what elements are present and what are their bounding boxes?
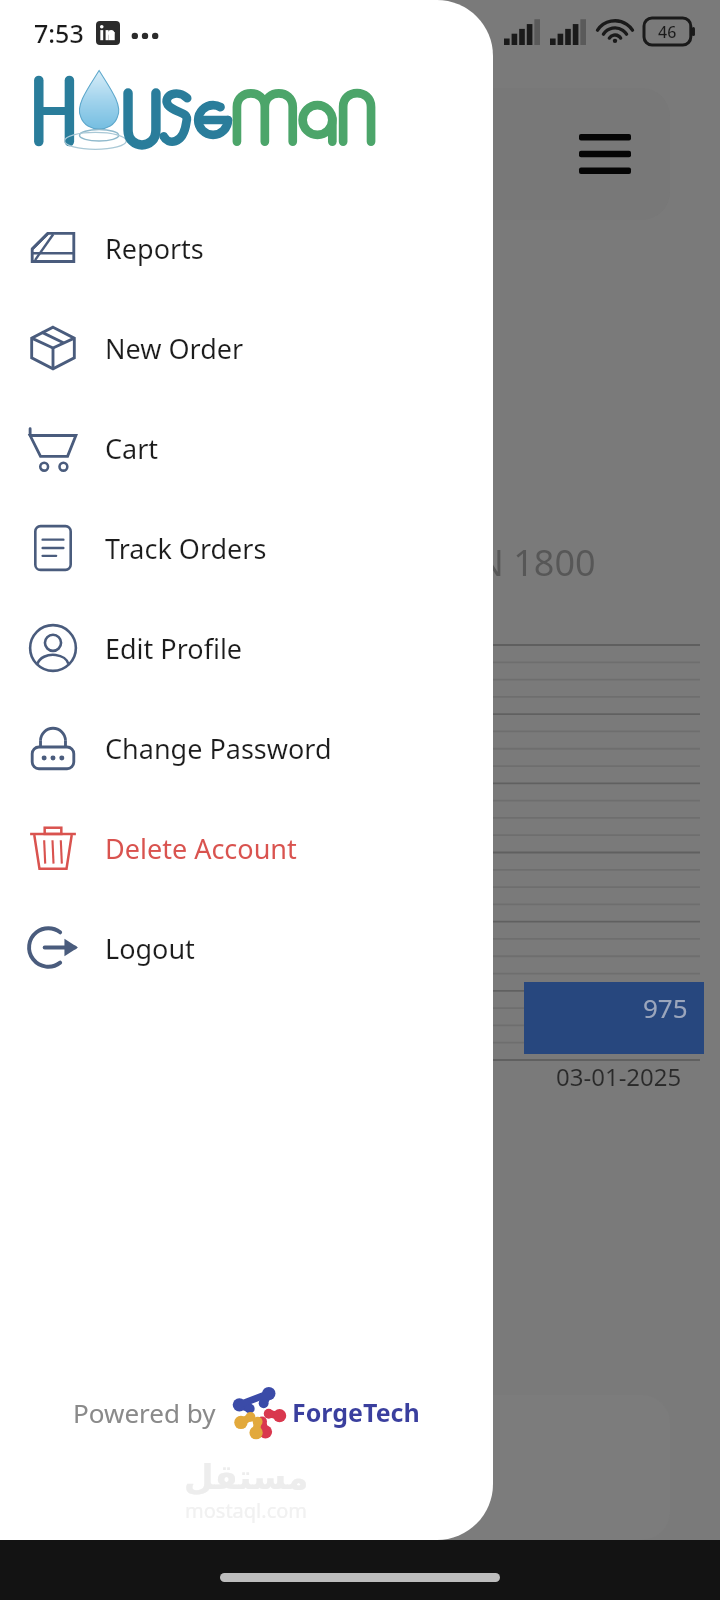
button[interactable]: Open menu — [330, 88, 670, 220]
staticText: Change Password — [105, 730, 332, 767]
staticText: Powered by — [73, 1395, 216, 1430]
staticText: 03-01-2025 — [556, 1060, 682, 1093]
staticText: 46 — [658, 21, 677, 43]
staticText: 7:53 — [34, 16, 84, 50]
staticText: Reports — [105, 230, 204, 267]
staticText: 975 — [643, 990, 688, 1025]
button[interactable]: Logout — [0, 898, 493, 998]
staticText: New Order — [105, 330, 244, 367]
button[interactable]: New Order — [0, 298, 493, 398]
button[interactable]: Cart — [0, 398, 493, 498]
staticText: Delete Account — [105, 830, 297, 867]
button[interactable]: Track Orders — [0, 498, 493, 598]
button[interactable]: Change Password — [0, 698, 493, 798]
button[interactable]: Edit Profile — [0, 598, 493, 698]
staticText: Logout — [105, 930, 195, 967]
staticText: Track Orders — [105, 530, 267, 567]
staticText: ForgeTech — [292, 1395, 420, 1429]
staticText: مستقل — [184, 1457, 309, 1497]
staticText: Edit Profile — [105, 630, 243, 667]
button[interactable]: Reports — [0, 198, 493, 298]
staticText: HOUSEMAN 1800 — [300, 538, 596, 587]
staticText: Cart — [105, 430, 159, 467]
staticText: mostaql.com — [185, 1497, 308, 1524]
button[interactable]: Delete Account — [0, 798, 493, 898]
